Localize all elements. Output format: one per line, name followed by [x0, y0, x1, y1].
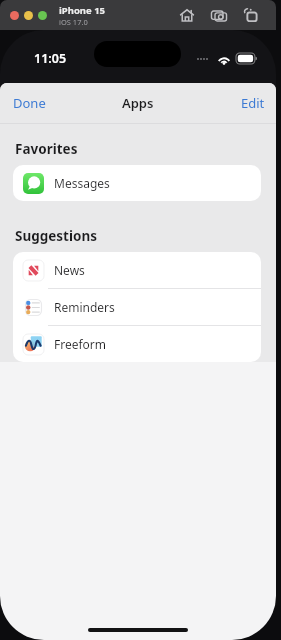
- button[interactable]: Done: [0, 86, 56, 120]
- staticText: Apps: [122, 94, 154, 112]
- staticText: Reminders: [54, 299, 115, 315]
- staticText: Edit: [241, 94, 265, 112]
- button[interactable]: Messages: [13, 165, 261, 201]
- button[interactable]: News: [13, 252, 261, 288]
- staticText: Freeform: [54, 336, 107, 352]
- button[interactable]: Record screen: [242, 6, 260, 24]
- button[interactable]: Edit: [231, 86, 276, 120]
- button[interactable]: Screenshot: [210, 6, 228, 24]
- staticText: iPhone 15: [59, 4, 106, 17]
- staticText: iOS 17.0: [59, 17, 88, 27]
- staticText: Done: [13, 94, 46, 112]
- staticText: News: [54, 262, 85, 278]
- button[interactable]: Home: [178, 6, 196, 24]
- staticText: Suggestions: [15, 227, 97, 245]
- staticText: 11:05: [34, 50, 67, 67]
- button[interactable]: Freeform: [13, 326, 261, 362]
- staticText: Favorites: [15, 140, 78, 158]
- staticText: Messages: [54, 175, 110, 191]
- button[interactable]: Reminders: [13, 289, 261, 325]
